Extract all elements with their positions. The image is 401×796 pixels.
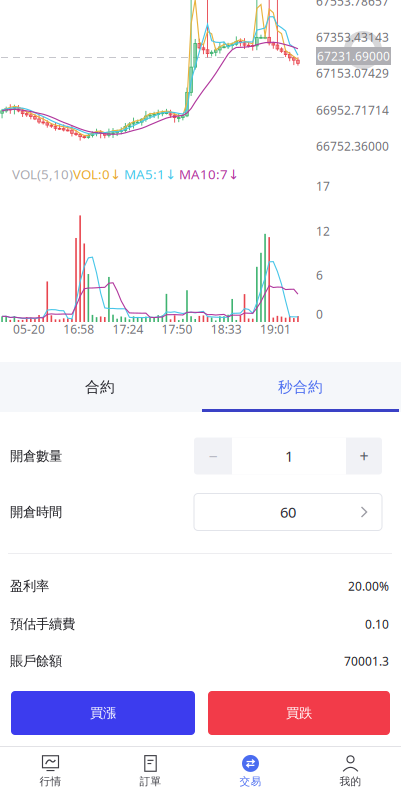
staticText: 67353.43143 [316,29,389,45]
staticText: 盈利率 [10,578,49,594]
button[interactable]: Increase quantity [346,437,382,474]
staticText: MA10:7↓ [176,165,239,183]
staticText: 20.00% [348,578,389,594]
staticText: 19:01 [260,321,291,337]
button[interactable]: 合約 [0,362,200,412]
staticText: 1 [285,446,293,466]
staticText: 預估手續費 [10,616,75,632]
staticText: 70001.3 [344,653,389,669]
staticText: MA5:1↓ [121,165,176,183]
staticText: 05-20 [13,321,45,337]
button[interactable]: 買跌 [208,691,390,735]
staticText: 訂單 [139,775,161,788]
button[interactable]: 秒合約 [200,362,401,412]
staticText: 開倉數量 [10,448,62,464]
button[interactable]: 買漲 [11,691,195,735]
staticText: 18:33 [211,321,242,337]
staticText: 67553.78657 [316,0,389,9]
staticText: 66952.71714 [316,102,389,118]
staticText: + [359,445,368,467]
staticText: 17:50 [162,321,193,337]
staticText: 賬戶餘額 [10,653,62,669]
staticText: 買漲 [90,705,116,721]
staticText: VOL:0↓ [73,165,121,183]
staticText: 60 [280,502,296,522]
staticText: 行情 [39,775,61,788]
staticText: 17 [316,178,330,194]
staticText: 我的 [339,775,361,788]
button[interactable]: Trade [200,747,300,796]
staticText: VOL(5,10) [12,165,73,183]
button[interactable]: Orders [100,747,200,796]
staticText: 67153.07429 [316,65,389,81]
staticText: 買跌 [286,705,312,721]
staticText: 合約 [85,378,115,396]
staticText: 6 [316,267,323,283]
staticText: 66752.36000 [316,138,389,154]
staticText: 16:58 [63,321,94,337]
button[interactable]: Markets [0,747,100,796]
staticText: 12 [316,223,330,239]
staticText: 秒合約 [278,378,323,396]
staticText: 交易 [239,775,261,788]
staticText: 17:24 [112,321,143,337]
button[interactable]: Profile [300,747,400,796]
button[interactable]: Decrease quantity [194,437,232,474]
staticText: − [208,445,217,467]
staticText: 0 [316,306,323,322]
button[interactable]: 60 [194,493,382,530]
staticText: 開倉時間 [10,504,62,520]
staticText: 67231.69000 [317,48,390,64]
staticText: 0.10 [365,616,389,632]
